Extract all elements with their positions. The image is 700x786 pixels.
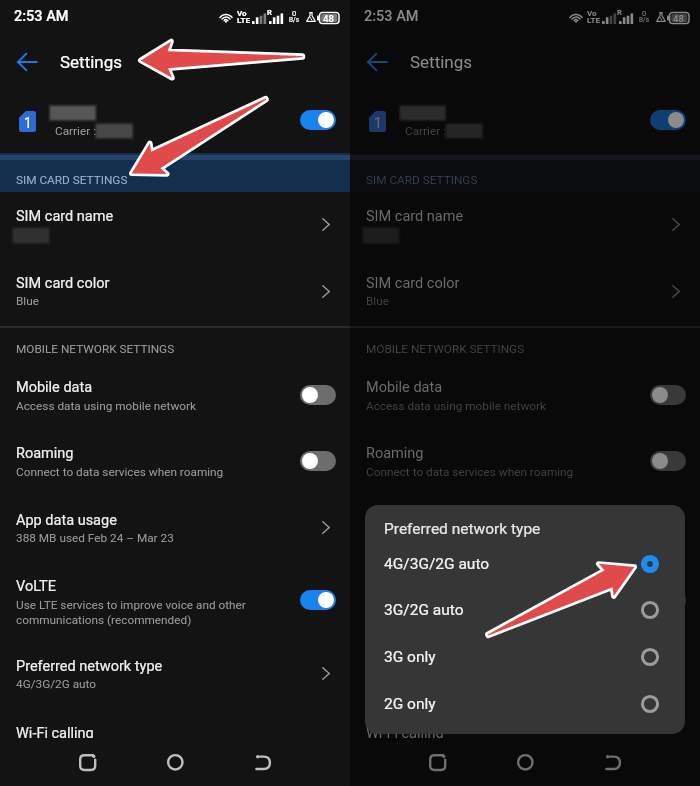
button[interactable] [0,370,350,422]
staticText: Carrier : [405,124,446,138]
staticText: Blue [366,294,389,308]
staticText: SIM card color [366,275,460,292]
button[interactable] [350,259,700,325]
staticText: 0 [642,9,647,18]
button[interactable]: Settings [52,40,162,76]
button[interactable]: Off [300,451,336,471]
staticText: Mobile data [16,379,93,396]
staticText: Roaming [366,445,424,462]
button[interactable]: 3G only [365,634,685,680]
button[interactable] [0,436,350,488]
button[interactable] [0,716,350,744]
staticText: Vo [237,9,247,18]
staticText: 4G/3G/2G auto [384,555,490,573]
staticText: Access data using mobile network [366,399,547,413]
button[interactable]: Back [591,740,635,784]
staticText: Use LTE services to improve voice and ot… [16,598,246,627]
staticText: Blue [16,294,39,308]
staticText: Roaming [16,445,74,462]
staticText: Preferred network type [16,658,163,675]
button[interactable]: On [650,590,686,610]
button[interactable]: 2G only [365,681,685,727]
button[interactable]: Off [300,385,336,405]
button[interactable] [350,569,700,631]
button[interactable] [350,191,700,257]
staticText: Vo [587,9,597,18]
button[interactable]: Back [9,44,45,80]
staticText: B/s [639,16,650,24]
button[interactable]: On [300,110,336,130]
staticText: Connect to data services when roaming [16,465,224,479]
button[interactable] [350,716,700,744]
button[interactable]: Off [650,451,686,471]
button[interactable] [0,503,350,555]
button[interactable]: Back [241,740,285,784]
staticText: Wi-Fi calling [16,725,94,742]
staticText: 48 [673,13,684,24]
button[interactable]: 3G/2G auto [365,587,685,633]
button[interactable] [0,569,350,631]
staticText: SIM CARD SETTINGS [16,173,128,187]
staticText: Mobile data [366,379,443,396]
button[interactable] [0,191,350,257]
staticText: Carrier : [55,124,96,138]
button[interactable] [350,436,700,488]
staticText: LTE [587,16,600,25]
button[interactable]: Home [503,740,547,784]
staticText: 3G/2G auto [384,601,464,619]
staticText: 2G only [384,695,436,713]
button[interactable] [0,96,350,148]
staticText: 1 [24,115,32,131]
staticText: 2:53 AM [14,8,69,25]
staticText: 388 MB used Feb 24 – Mar 23 [16,531,174,545]
button[interactable]: Off [650,385,686,405]
staticText: App data usage [366,512,467,529]
button[interactable]: 4G/3G/2G auto [365,541,685,587]
button[interactable] [0,259,350,325]
button[interactable] [350,370,700,422]
staticText: Preferred network type [384,520,541,538]
staticText: Wi-Fi calling [366,725,444,742]
staticText: R [617,8,622,17]
button[interactable]: On [650,110,686,130]
staticText: Preferred network type [366,658,513,675]
staticText: Settings [410,52,473,72]
staticText: MOBILE NETWORK SETTINGS [366,342,525,356]
staticText: 3G only [384,648,436,666]
staticText: Access data using mobile network [16,399,197,413]
staticText: 1 [374,115,382,131]
button[interactable] [350,503,700,555]
staticText: 4G/3G/2G auto [16,677,97,691]
staticText: Connect to data services when roaming [366,465,574,479]
staticText: App data usage [16,512,117,529]
staticText: Settings [60,52,123,72]
button[interactable]: Settings [402,40,512,76]
staticText: 388 MB used Feb 24 – Mar 23 [366,531,524,545]
staticText: SIM CARD SETTINGS [366,173,478,187]
button[interactable] [350,96,700,148]
staticText: R [267,8,272,17]
staticText: 2:53 AM [364,8,419,25]
button[interactable]: On [300,590,336,610]
staticText: LTE [237,16,250,25]
staticText: VoLTE [16,578,56,595]
button[interactable]: Recents [416,740,460,784]
button[interactable]: Back [359,44,395,80]
staticText: 0 [292,9,297,18]
button[interactable] [0,649,350,701]
button[interactable]: Recents [66,740,110,784]
staticText: MOBILE NETWORK SETTINGS [16,342,175,356]
button[interactable] [350,649,700,701]
staticText: Use LTE services to improve voice and ot… [366,598,596,627]
button[interactable]: Home [153,740,197,784]
staticText: B/s [289,16,300,24]
staticText: SIM card color [16,275,110,292]
staticText: SIM card name [366,208,464,225]
staticText: SIM card name [16,208,114,225]
staticText: 48 [323,13,334,24]
